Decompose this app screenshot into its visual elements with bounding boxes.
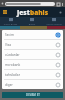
staticText: diger — [5, 83, 56, 87]
staticText: bahis — [30, 8, 49, 17]
staticText: Jest — [17, 8, 30, 17]
staticText: Secim — [5, 33, 56, 37]
button[interactable]: Secim — [2, 30, 63, 39]
staticText: DEVAM ET — [26, 93, 40, 97]
button[interactable]: BAHIS — [21, 17, 43, 26]
button[interactable]: DEVAM ET — [2, 92, 63, 98]
button[interactable]: CANLI CASINO — [43, 17, 65, 26]
button[interactable]: Visa — [2, 40, 63, 49]
staticText: mcrobank — [5, 63, 56, 67]
button[interactable]: mcrobank — [2, 60, 63, 69]
button[interactable]: More options — [60, 2, 64, 6]
staticText: Visa — [5, 43, 56, 47]
staticText: CANLI BAHIS — [0, 23, 21, 26]
other: Secure — [1, 2, 4, 5]
button[interactable]: cüzdanlar — [2, 50, 63, 59]
button[interactable] — [5, 2, 55, 6]
button[interactable]: tahsilatlar — [2, 70, 63, 79]
button[interactable]: diger — [2, 80, 63, 89]
button[interactable]: Account — [58, 10, 63, 15]
button[interactable]: Menu — [2, 9, 8, 15]
staticText: BAHIS — [21, 23, 43, 26]
staticText: CANLI CASINO — [43, 23, 65, 26]
staticText: cüzdanlar — [5, 53, 56, 57]
staticText: tahsilatlar — [5, 73, 56, 77]
button[interactable]: CANLI BAHIS — [0, 17, 21, 26]
button[interactable]: Tabs — [56, 2, 60, 6]
